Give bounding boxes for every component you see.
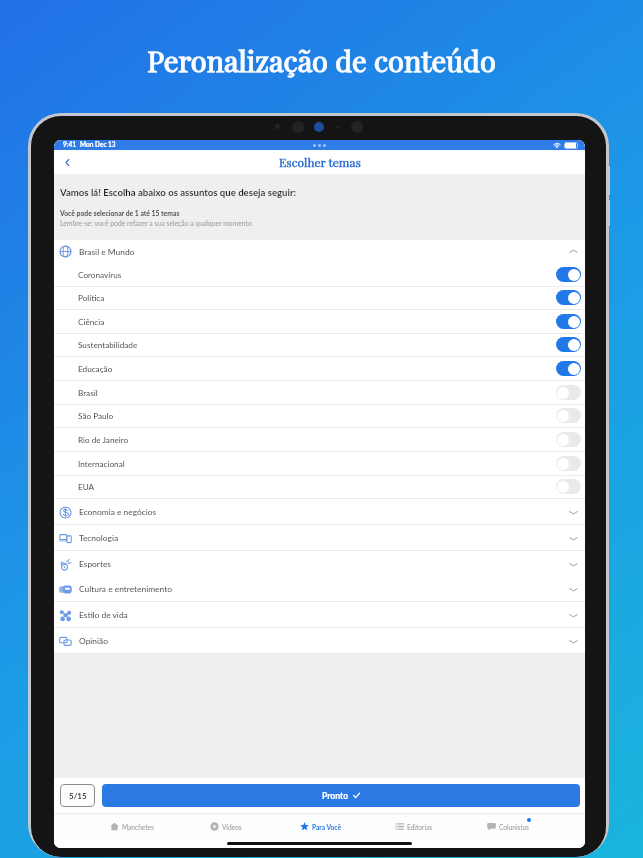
staticText: Cultura e entretenimento	[79, 584, 172, 594]
staticText: Editorias	[407, 823, 433, 831]
button[interactable]: EUA	[54, 475, 585, 498]
staticText: Internacional	[78, 459, 125, 469]
button[interactable]: Sustentabilidade	[54, 333, 585, 356]
staticText: Brasil	[78, 388, 98, 398]
staticText: EUA	[78, 482, 95, 492]
button[interactable]: Colunistas	[461, 814, 555, 839]
button[interactable]: Opinião	[54, 628, 585, 654]
button[interactable]: Manchetes	[84, 814, 179, 839]
button[interactable]: Pronto	[102, 784, 580, 807]
staticText: Vamos lá! Escolha abaixo os assuntos que…	[60, 187, 297, 199]
staticText: Estilo de vida	[79, 610, 128, 620]
button[interactable]: Esportes	[54, 551, 585, 577]
staticText: Mon Dec 13	[80, 141, 116, 149]
button[interactable]: Para Você	[273, 814, 367, 839]
button[interactable]: 5/15	[60, 784, 95, 807]
staticText: 9:41	[63, 141, 76, 149]
staticText: Tecnologia	[79, 533, 119, 543]
button[interactable]: Economia e negócios	[54, 499, 585, 525]
staticText: Peronalização de conteúdo	[0, 41, 643, 80]
staticText: Sustentabilidade	[78, 340, 138, 350]
button[interactable]: Coronavírus	[54, 263, 585, 286]
button[interactable]: Ciência	[54, 310, 585, 333]
staticText: Colunistas	[499, 823, 529, 831]
staticText: Educação	[78, 364, 113, 374]
button[interactable]: Estilo de vida	[54, 602, 585, 628]
staticText: Política	[78, 293, 105, 303]
staticText: Coronavírus	[78, 270, 122, 280]
staticText: Brasil e Mundo	[79, 247, 135, 257]
staticText: Esportes	[79, 559, 111, 569]
staticText: Escolher temas	[279, 154, 361, 170]
button[interactable]: Editorias	[367, 814, 461, 839]
button[interactable]: Back	[58, 153, 76, 171]
button[interactable]: Vídeos	[179, 814, 273, 839]
staticText: Pronto	[322, 791, 349, 801]
button[interactable]: Rio de Janeiro	[54, 428, 585, 451]
staticText: Vídeos	[222, 823, 242, 831]
staticText: Ciência	[78, 317, 105, 327]
staticText: Manchetes	[122, 823, 154, 831]
staticText: 5/15	[69, 791, 87, 801]
staticText: Para Você	[312, 823, 341, 831]
staticText: São Paulo	[78, 411, 114, 421]
button[interactable]: Política	[54, 286, 585, 309]
button[interactable]: Brasil e Mundo	[54, 240, 585, 263]
button[interactable]: Internacional	[54, 452, 585, 475]
button[interactable]: Brasil	[54, 381, 585, 404]
staticText: Rio de Janeiro	[78, 435, 129, 445]
button[interactable]: Tecnologia	[54, 525, 585, 551]
button[interactable]: São Paulo	[54, 404, 585, 427]
staticText: Economia e negócios	[79, 507, 157, 517]
staticText: Opinião	[79, 636, 108, 646]
staticText: Lembre-se: você pode refazer a sua seleç…	[60, 219, 252, 227]
staticText: Você pode selecionar de 1 até 15 temas	[60, 209, 180, 217]
button[interactable]: Cultura e entretenimento	[54, 576, 585, 602]
button[interactable]: Educação	[54, 357, 585, 380]
